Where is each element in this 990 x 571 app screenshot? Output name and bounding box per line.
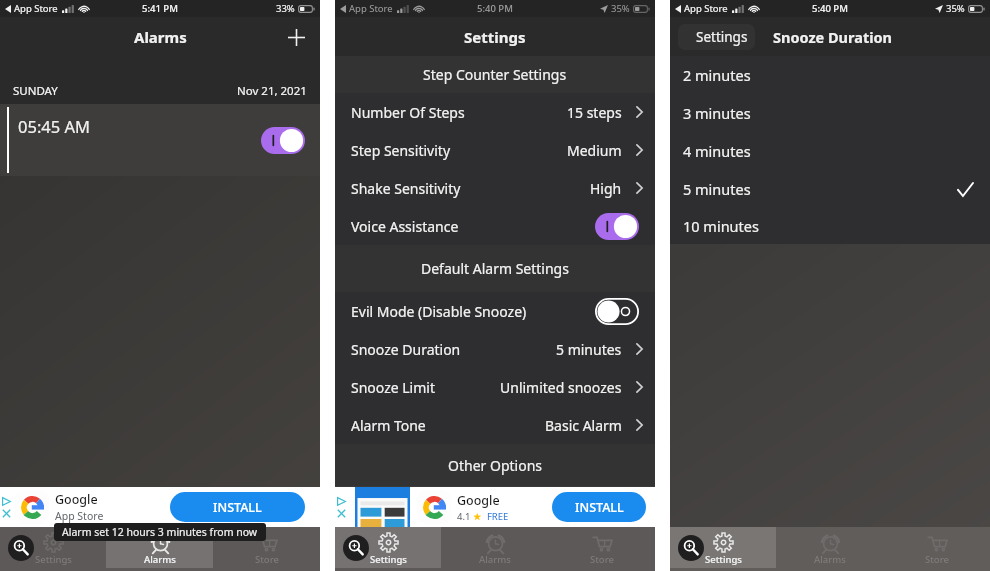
staticText: App Store <box>55 509 104 523</box>
staticText: ★ <box>473 511 482 522</box>
button[interactable]: Zoom controls <box>678 535 704 561</box>
staticText: Alarms <box>814 553 846 566</box>
button[interactable]: Add alarm <box>283 24 309 50</box>
button[interactable]: 2 minutes <box>670 56 990 94</box>
staticText: 3 minutes <box>683 103 751 123</box>
button[interactable]: Enabled <box>261 127 305 154</box>
staticText: Step Sensitivity <box>351 141 451 160</box>
button[interactable]: Zoom controls <box>8 535 34 561</box>
staticText: 5:40 PM <box>812 2 848 15</box>
staticText: Snooze Limit <box>351 378 435 397</box>
button[interactable]: Voice Assistance <box>335 207 655 245</box>
staticText: Settings <box>696 28 748 46</box>
staticText: 5 minutes <box>556 340 622 359</box>
button[interactable]: Settings <box>670 527 776 568</box>
staticText: Default Alarm Settings <box>421 259 569 278</box>
staticText: Other Options <box>448 456 542 475</box>
button[interactable]: Disabled <box>595 298 639 325</box>
button[interactable]: 05:45 AM <box>0 104 320 176</box>
button[interactable]: Alarms <box>441 527 548 568</box>
staticText: Basic Alarm <box>545 416 622 435</box>
button[interactable]: 5 minutes <box>670 170 990 208</box>
button[interactable]: Store <box>548 527 655 568</box>
button[interactable]: Snooze Duration <box>335 330 655 368</box>
staticText: App Store <box>14 2 58 15</box>
staticText: Alarm Tone <box>351 416 426 435</box>
staticText: 10 minutes <box>683 216 759 236</box>
staticText: 5 minutes <box>683 179 751 199</box>
staticText: Store <box>255 553 279 566</box>
staticText: 4.1 <box>457 510 473 523</box>
staticText: Settings <box>464 27 526 47</box>
staticText: SUNDAY <box>13 83 58 99</box>
button[interactable]: INSTALL <box>170 492 305 522</box>
staticText: Medium <box>567 141 622 160</box>
staticText: Alarms <box>134 27 187 47</box>
button[interactable]: Evil Mode (Disable Snooze) <box>335 292 655 330</box>
button[interactable]: 10 minutes <box>670 208 990 244</box>
staticText: App Store <box>349 2 393 15</box>
button[interactable]: Store <box>883 527 990 568</box>
button[interactable]: Zoom controls <box>343 535 369 561</box>
staticText: 15 steps <box>567 103 622 122</box>
staticText: 2 minutes <box>683 65 751 85</box>
staticText: Nov 21, 2021 <box>237 83 307 99</box>
staticText: 33% <box>276 2 295 15</box>
button[interactable]: Shake Sensitivity <box>335 169 655 207</box>
staticText: Snooze Duration <box>351 340 461 359</box>
button[interactable]: 3 minutes <box>670 94 990 132</box>
button[interactable]: Alarm Tone <box>335 406 655 444</box>
button[interactable]: Settings <box>0 527 106 568</box>
button[interactable]: Number Of Steps <box>335 93 655 131</box>
button[interactable]: Alarms <box>106 527 213 568</box>
button[interactable]: Enabled <box>595 213 639 240</box>
staticText: Unlimited snoozes <box>500 378 622 397</box>
button[interactable]: 4 minutes <box>670 132 990 170</box>
staticText: Alarms <box>479 553 511 566</box>
staticText: Google <box>457 492 500 509</box>
staticText: High <box>590 179 622 198</box>
button[interactable]: Snooze Limit <box>335 368 655 406</box>
staticText: Alarms <box>144 553 176 566</box>
staticText: Snooze Duration <box>773 27 893 47</box>
staticText: Number Of Steps <box>351 103 465 122</box>
staticText: Settings <box>370 553 407 566</box>
staticText: Store <box>925 553 949 566</box>
staticText: 35% <box>946 2 965 15</box>
staticText: Alarm set 12 hours 3 minutes from now <box>62 525 258 539</box>
button[interactable]: INSTALL <box>552 492 646 522</box>
staticText: Voice Assistance <box>351 217 459 236</box>
button[interactable]: Settings <box>335 527 441 568</box>
button[interactable]: Store <box>213 527 320 568</box>
staticText: Google <box>55 491 98 508</box>
staticText: INSTALL <box>213 499 262 516</box>
staticText: Settings <box>35 553 72 566</box>
staticText: 05:45 AM <box>18 115 90 137</box>
button[interactable]: Settings <box>678 24 755 50</box>
staticText: Step Counter Settings <box>423 65 567 84</box>
staticText: 35% <box>611 2 630 15</box>
staticText: 5:40 PM <box>477 2 513 15</box>
staticText: Settings <box>705 553 742 566</box>
button[interactable]: Alarms <box>776 527 883 568</box>
staticText: INSTALL <box>575 499 624 516</box>
button[interactable]: Step Sensitivity <box>335 131 655 169</box>
staticText: FREE <box>482 510 509 523</box>
staticText: 5:41 PM <box>142 2 178 15</box>
staticText: Store <box>590 553 614 566</box>
staticText: Evil Mode (Disable Snooze) <box>351 302 527 321</box>
staticText: Shake Sensitivity <box>351 179 461 198</box>
staticText: App Store <box>684 2 728 15</box>
staticText: 4 minutes <box>683 141 751 161</box>
